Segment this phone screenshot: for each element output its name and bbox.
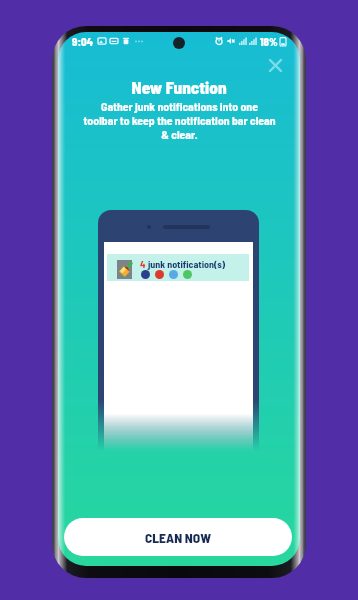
staticText: New Function: [131, 77, 227, 98]
staticText: CLEAN NOW: [145, 529, 212, 545]
staticText: junk notification(s): [148, 258, 226, 270]
staticText: 4: [140, 258, 146, 270]
staticText: Gather junk notifications into one toolb…: [83, 99, 276, 141]
staticText: 9:04: [72, 35, 93, 48]
staticText: 18%: [260, 35, 278, 48]
button[interactable]: CLEAN NOW: [64, 518, 292, 556]
button[interactable]: 4: [107, 254, 249, 281]
button[interactable]: Close: [263, 53, 287, 77]
